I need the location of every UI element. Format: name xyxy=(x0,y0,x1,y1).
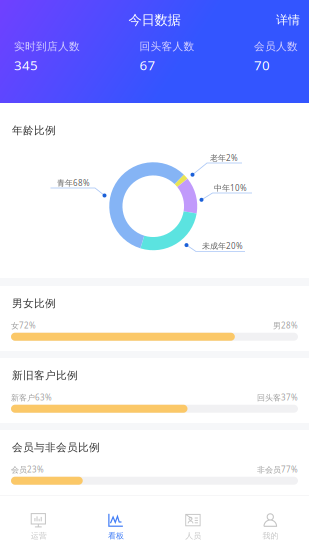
staticText: 我的 xyxy=(262,531,278,541)
staticText: 实时到店人数 xyxy=(14,40,80,53)
button[interactable]: 运营 xyxy=(0,495,77,550)
staticText: 详情 xyxy=(276,13,300,27)
staticText: 回头客人数 xyxy=(139,40,194,53)
staticText: 70 xyxy=(254,56,270,74)
staticText: 345 xyxy=(14,56,38,74)
staticText: 67 xyxy=(139,56,155,74)
staticText: 女72% xyxy=(11,320,36,331)
button[interactable]: 看板 xyxy=(77,495,154,550)
staticText: 看板 xyxy=(108,531,124,541)
button[interactable]: 详情 xyxy=(267,7,309,33)
staticText: 运营 xyxy=(31,531,47,541)
staticText: 会员人数 xyxy=(254,40,298,53)
staticText: 人员 xyxy=(185,531,201,541)
staticText: 中年10% xyxy=(214,182,247,193)
staticText: 非会员77% xyxy=(257,464,298,475)
button[interactable]: 我的 xyxy=(232,495,309,550)
staticText: 新旧客户比例 xyxy=(12,369,78,382)
staticText: 会员23% xyxy=(11,464,44,475)
staticText: 会员与非会员比例 xyxy=(12,441,100,454)
staticText: 今日数据 xyxy=(128,12,180,28)
staticText: 新客户63% xyxy=(11,392,52,403)
staticText: 未成年20% xyxy=(202,240,243,251)
staticText: 老年2% xyxy=(210,152,238,163)
staticText: 回头客37% xyxy=(257,392,298,403)
staticText: 青年68% xyxy=(57,177,90,188)
staticText: 男28% xyxy=(273,320,298,331)
staticText: 年龄比例 xyxy=(12,124,56,137)
button[interactable]: 人员 xyxy=(154,495,232,550)
staticText: 男女比例 xyxy=(12,297,56,310)
